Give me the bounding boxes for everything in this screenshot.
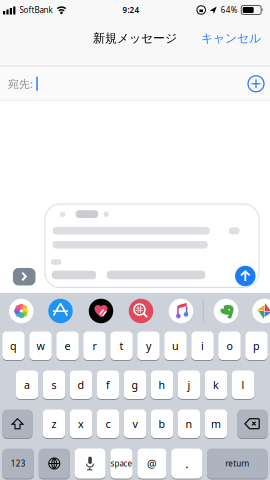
staticText: x	[78, 417, 84, 431]
staticText: l	[241, 378, 244, 392]
staticText: z	[51, 417, 56, 431]
button[interactable]: App Store	[48, 299, 73, 323]
button[interactable]: o	[218, 331, 241, 360]
staticText: j	[187, 378, 190, 392]
button[interactable]: キャンセル	[201, 31, 270, 46]
staticText: 新規メッセージ	[93, 31, 177, 46]
staticText: w	[36, 339, 44, 353]
button[interactable]: m	[205, 409, 227, 438]
button[interactable]: i	[191, 331, 214, 360]
button[interactable]: Expand Apps	[13, 268, 35, 285]
staticText: i	[201, 339, 204, 353]
button[interactable]: Evernote	[214, 299, 238, 323]
staticText: 宛先:	[8, 77, 33, 91]
button[interactable]: e	[56, 331, 79, 360]
button[interactable]: Next Keyboard	[39, 448, 70, 479]
staticText: t	[119, 339, 123, 353]
staticText: キャンセル	[201, 31, 261, 46]
button[interactable]: 123	[2, 448, 34, 479]
staticText: v	[132, 417, 137, 431]
staticText: o	[226, 339, 232, 353]
button[interactable]: d	[70, 370, 92, 399]
staticText: a	[24, 378, 30, 392]
button[interactable]: Dictate	[74, 448, 105, 479]
button[interactable]: v	[124, 409, 146, 438]
button[interactable]: f	[97, 370, 119, 399]
staticText: r	[92, 339, 96, 353]
button[interactable]: g	[124, 370, 146, 399]
button[interactable]: z	[43, 409, 65, 438]
button[interactable]: u	[164, 331, 187, 360]
staticText: @	[147, 456, 157, 471]
button[interactable]: return	[207, 448, 267, 479]
staticText: d	[77, 378, 84, 392]
button[interactable]: t	[110, 331, 133, 360]
button[interactable]: y	[137, 331, 160, 360]
staticText: 9:24	[122, 5, 139, 15]
staticText: k	[213, 378, 219, 392]
button[interactable]: n	[178, 409, 200, 438]
button[interactable]: #images	[129, 299, 153, 323]
button[interactable]: w	[29, 331, 52, 360]
staticText: return	[225, 458, 249, 469]
staticText: SoftBank	[19, 5, 52, 15]
button[interactable]: Music	[169, 299, 193, 323]
staticText: h	[158, 378, 165, 392]
button[interactable]: p	[245, 331, 268, 360]
button[interactable]: Photos	[9, 299, 34, 323]
button[interactable]: space	[110, 448, 132, 479]
staticText: p	[253, 339, 260, 353]
staticText: 123	[11, 458, 26, 469]
staticText: u	[172, 339, 179, 353]
staticText: c	[105, 417, 110, 431]
button[interactable]: .	[171, 448, 202, 479]
button[interactable]: k	[205, 370, 227, 399]
staticText: space	[110, 458, 132, 469]
button[interactable]: h	[151, 370, 173, 399]
staticText: .	[185, 455, 188, 471]
staticText: s	[51, 378, 56, 392]
staticText: m	[211, 417, 221, 431]
button[interactable]: a	[16, 370, 38, 399]
button[interactable]: s	[43, 370, 65, 399]
staticText: q	[10, 339, 17, 353]
button[interactable]: x	[70, 409, 92, 438]
button[interactable]: Google Photos	[252, 299, 270, 323]
button[interactable]: l	[232, 370, 254, 399]
button[interactable]: r	[83, 331, 106, 360]
staticText: e	[64, 339, 70, 353]
button[interactable]: Send	[235, 266, 256, 286]
staticText: y	[146, 339, 151, 353]
button[interactable]: Shift	[2, 409, 32, 438]
staticText: f	[106, 378, 110, 392]
button[interactable]: Add Contact	[245, 73, 267, 95]
staticText: 64%	[221, 5, 238, 15]
button[interactable]: Digital Touch	[89, 299, 113, 323]
staticText: b	[158, 417, 165, 431]
staticText: n	[185, 417, 192, 431]
button[interactable]: j	[178, 370, 200, 399]
button[interactable]: b	[151, 409, 173, 438]
button[interactable]: c	[97, 409, 119, 438]
button[interactable]: q	[2, 331, 25, 360]
button[interactable]: @	[137, 448, 166, 479]
staticText: g	[131, 378, 138, 392]
button[interactable]: Delete	[237, 409, 267, 438]
